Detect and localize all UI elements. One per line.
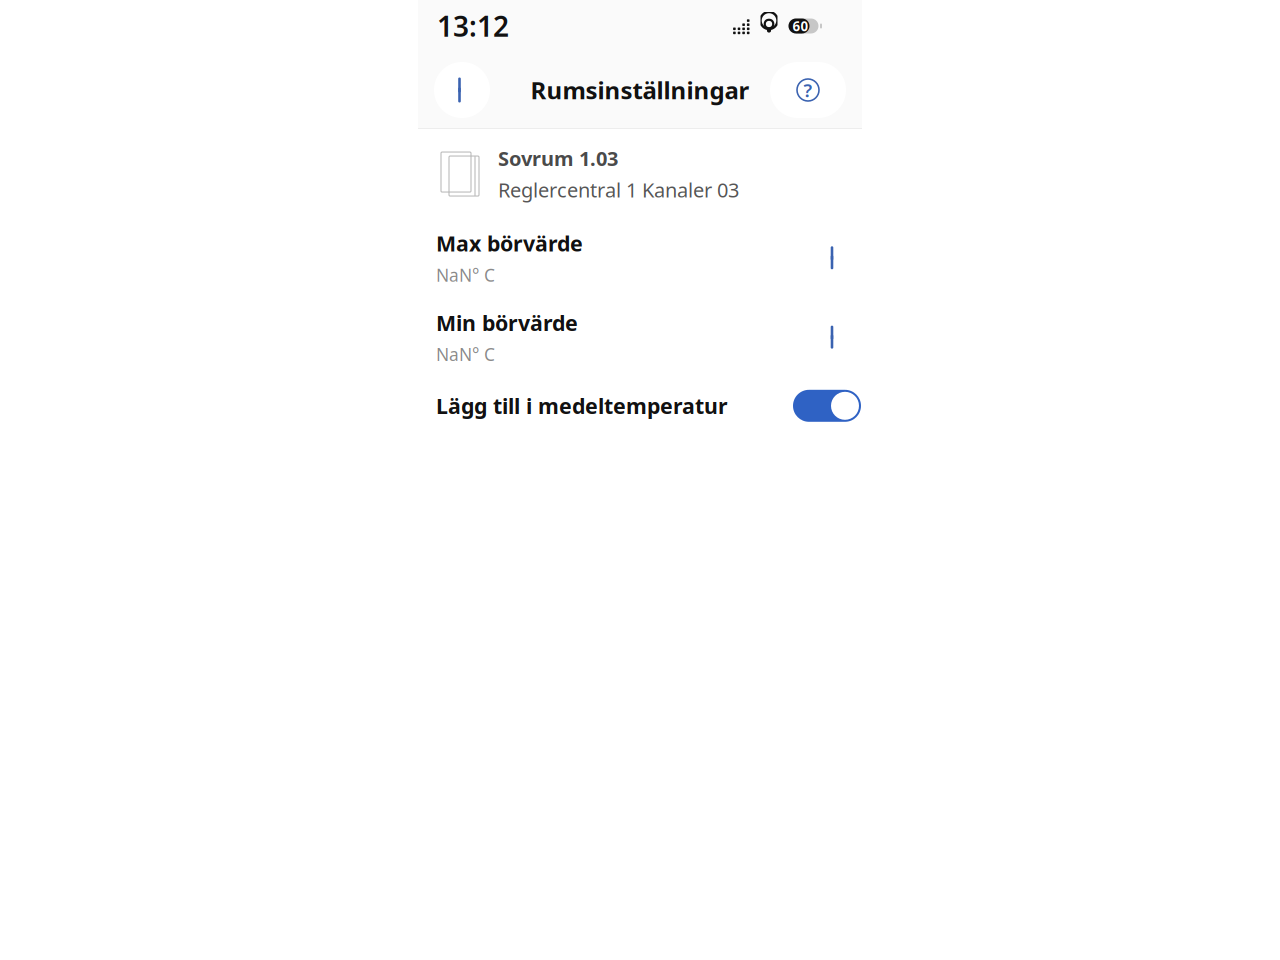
- staticText: Lägg till i medeltemperatur: [436, 392, 728, 420]
- staticText: Sovrum 1.03: [498, 145, 618, 172]
- button[interactable]: Hjälp: [770, 62, 846, 118]
- button[interactable]: Tillbaka: [434, 62, 490, 118]
- staticText: NaN° C: [436, 343, 495, 366]
- staticText: Max börvärde: [436, 229, 583, 257]
- staticText: NaN° C: [436, 263, 495, 286]
- staticText: Rumsinställningar: [530, 74, 749, 106]
- staticText: 60: [792, 17, 808, 35]
- staticText: 13:12: [437, 7, 509, 45]
- staticText: Reglercentral 1 Kanaler 03: [498, 177, 739, 203]
- button[interactable]: Max börvärde: [418, 217, 862, 296]
- staticText: ?: [803, 78, 812, 102]
- button[interactable]: Lägg till i medeltemperatur: [418, 376, 862, 436]
- staticText: Min börvärde: [436, 308, 578, 337]
- button[interactable]: Min börvärde: [418, 296, 862, 376]
